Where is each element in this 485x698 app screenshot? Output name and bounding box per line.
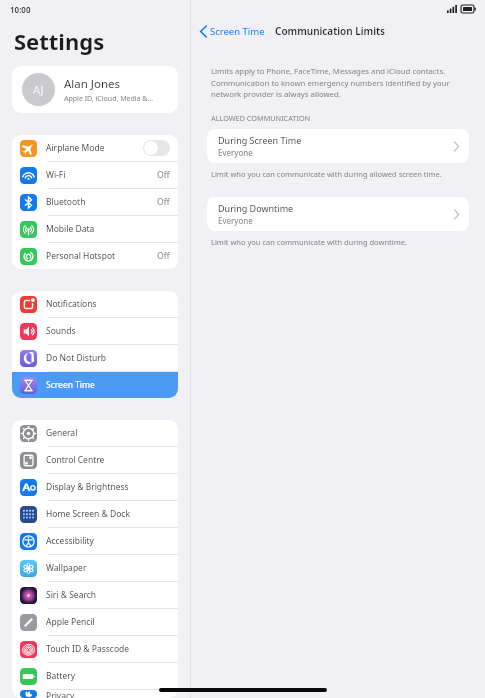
staticText: Airplane Mode [46, 142, 143, 154]
staticText: Everyone [218, 215, 253, 226]
staticText: Limits apply to Phone, FaceTime, Message… [211, 66, 451, 99]
button[interactable]: Bluetooth [12, 189, 178, 215]
staticText: Off [157, 169, 170, 181]
staticText: Apple Pencil [46, 616, 170, 628]
staticText: Apple ID, iCloud, Media &… [64, 94, 153, 104]
button[interactable]: Apple Pencil [12, 609, 178, 635]
staticText: Settings [14, 26, 105, 56]
button[interactable]: Wi-Fi [12, 162, 178, 188]
staticText: Siri & Search [46, 589, 170, 601]
button[interactable]: During Downtime [207, 197, 469, 231]
staticText: Sounds [46, 325, 170, 337]
staticText: Do Not Disturb [46, 352, 170, 364]
staticText: 10:00 [10, 4, 31, 15]
button[interactable]: Sounds [12, 318, 178, 344]
staticText: Bluetooth [46, 196, 157, 208]
button[interactable]: Screen Time [198, 22, 267, 41]
staticText: Limit who you can communicate with durin… [211, 237, 407, 247]
button[interactable]: Battery [12, 663, 178, 689]
staticText: Battery [46, 670, 170, 682]
button[interactable]: Home Screen & Dock [12, 501, 178, 527]
staticText: Touch ID & Passcode [46, 643, 170, 655]
button[interactable]: Do Not Disturb [12, 345, 178, 371]
button[interactable]: Control Centre [12, 447, 178, 473]
button[interactable]: General [12, 420, 178, 446]
button[interactable]: Wallpaper [12, 555, 178, 581]
button[interactable]: Screen Time [12, 372, 178, 398]
button[interactable]: Privacy [12, 690, 178, 698]
button[interactable]: Display & Brightness [12, 474, 178, 500]
staticText: Screen Time [210, 25, 265, 38]
staticText: Control Centre [46, 454, 170, 466]
button[interactable]: Airplane Mode [12, 135, 178, 161]
staticText: Mobile Data [46, 223, 170, 235]
staticText: Accessibility [46, 535, 170, 547]
other: Airplane Mode toggle [143, 140, 170, 156]
button[interactable]: Siri & Search [12, 582, 178, 608]
staticText: Wallpaper [46, 562, 170, 574]
button[interactable]: Touch ID & Passcode [12, 636, 178, 662]
button[interactable]: Mobile Data [12, 216, 178, 242]
button[interactable]: Accessibility [12, 528, 178, 554]
button[interactable]: AJ [12, 66, 178, 113]
staticText: Off [157, 196, 170, 208]
staticText: Limit who you can communicate with durin… [211, 169, 442, 179]
staticText: During Screen Time [218, 134, 302, 146]
staticText: Home Screen & Dock [46, 508, 170, 520]
staticText: ALLOWED COMMUNICATION [211, 113, 311, 123]
staticText: Alan Jones [64, 76, 121, 92]
button[interactable]: Personal Hotspot [12, 243, 178, 269]
staticText: Screen Time [46, 379, 170, 391]
staticText: Privacy [46, 690, 170, 698]
staticText: General [46, 427, 170, 439]
staticText: During Downtime [218, 202, 294, 214]
staticText: AJ [33, 82, 44, 97]
button[interactable]: Notifications [12, 291, 178, 317]
staticText: Everyone [218, 147, 253, 158]
staticText: Off [157, 250, 170, 262]
staticText: Communication Limits [275, 24, 385, 38]
staticText: Notifications [46, 298, 170, 310]
staticText: Personal Hotspot [46, 250, 157, 262]
staticText: Wi-Fi [46, 169, 157, 181]
staticText: Display & Brightness [46, 481, 170, 493]
button[interactable]: During Screen Time [207, 129, 469, 163]
